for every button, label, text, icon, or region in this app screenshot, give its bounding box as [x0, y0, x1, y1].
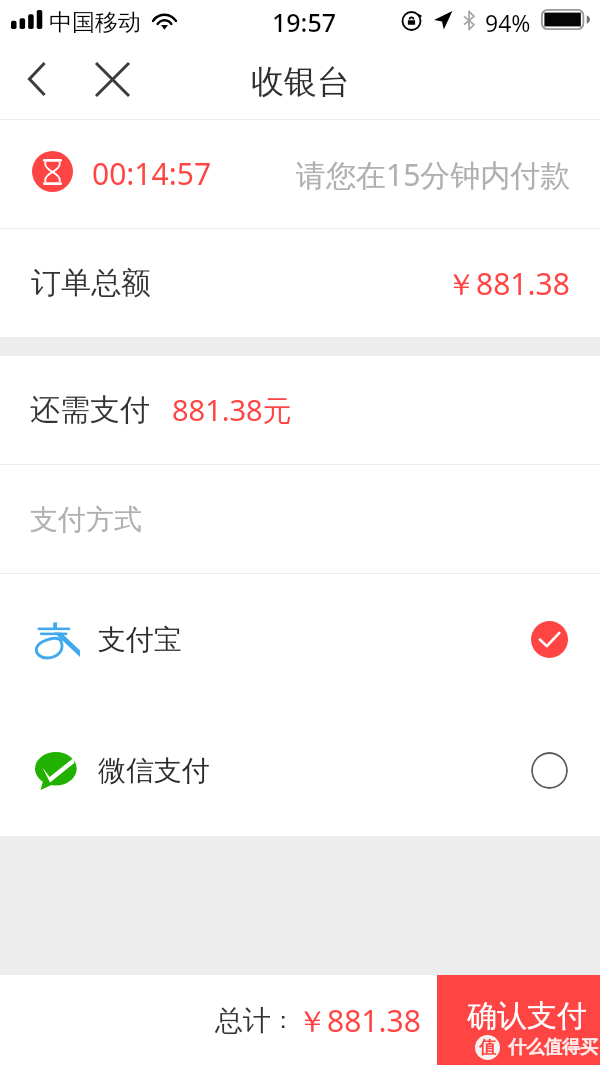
staticText: 00:14:57	[92, 153, 212, 194]
staticText: 收银台	[251, 61, 350, 103]
staticText: ：	[271, 1005, 295, 1035]
staticText: ￥881.38	[446, 263, 570, 304]
button[interactable]: Back	[8, 53, 66, 111]
button[interactable]: Selected	[531, 621, 568, 658]
staticText: 什么值得买	[508, 1036, 598, 1059]
staticText: 还需支付	[30, 391, 150, 429]
staticText: 微信支付	[98, 753, 210, 788]
staticText: 支付方式	[30, 502, 142, 537]
staticText: 确认支付	[467, 997, 587, 1035]
button[interactable]: 支付宝	[0, 574, 600, 705]
button[interactable]: Close	[83, 53, 141, 111]
button[interactable]: 微信支付	[0, 705, 600, 836]
button[interactable]: Not selected	[531, 752, 568, 789]
button[interactable]: 确认支付	[437, 975, 600, 1065]
staticText: 94%	[485, 7, 531, 38]
staticText: 订单总额	[31, 264, 151, 302]
staticText: 值	[479, 1037, 496, 1058]
staticText: 请您在15分钟内付款	[296, 154, 571, 195]
staticText: 881.38元	[172, 390, 292, 430]
staticText: 19:57	[272, 5, 337, 39]
staticText: 中国移动	[49, 8, 141, 37]
staticText: 总计	[215, 1003, 271, 1038]
staticText: ￥881.38	[297, 1000, 421, 1041]
staticText: 支付宝	[98, 622, 182, 657]
